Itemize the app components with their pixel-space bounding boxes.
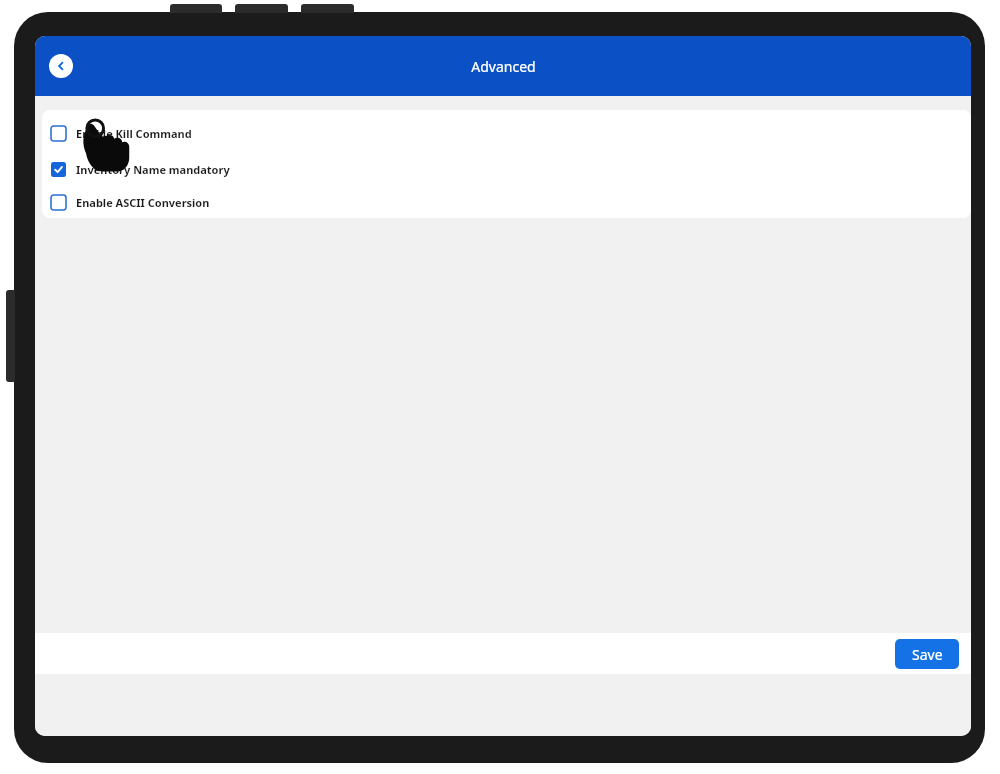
button[interactable]: Save	[895, 639, 959, 669]
staticText: Enable Kill Command	[76, 126, 192, 141]
button[interactable]: Back	[49, 54, 73, 78]
staticText: Enable ASCII Conversion	[76, 195, 210, 210]
button[interactable]: Enable Kill Command	[51, 115, 971, 151]
staticText: Advanced	[471, 57, 536, 76]
button[interactable]: Enable ASCII Conversion	[51, 187, 971, 218]
staticText: Inventory Name mandatory	[76, 162, 230, 177]
button[interactable]: Inventory Name mandatory	[51, 151, 971, 187]
staticText: Save	[912, 645, 943, 664]
